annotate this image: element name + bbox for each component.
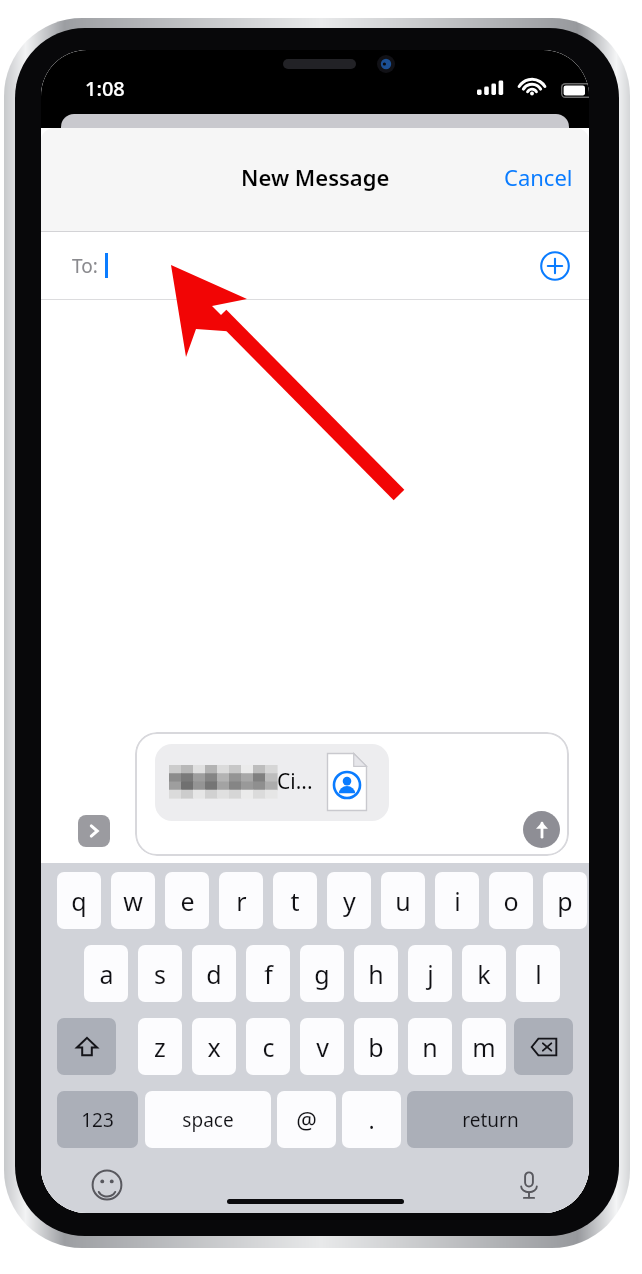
staticText: 1:08: [85, 75, 125, 102]
button[interactable]: c: [246, 1018, 290, 1075]
staticText: return: [462, 1107, 519, 1133]
button[interactable]: v: [300, 1018, 344, 1075]
button[interactable]: j: [408, 945, 452, 1002]
button[interactable]: l: [516, 945, 560, 1002]
staticText: s: [154, 957, 166, 991]
button[interactable]: b: [354, 1018, 398, 1075]
staticText: h: [368, 957, 384, 991]
staticText: d: [206, 957, 222, 991]
button[interactable]: m: [462, 1018, 506, 1075]
button[interactable]: Ci...: [155, 744, 389, 821]
button[interactable]: Shift: [57, 1018, 116, 1075]
staticText: Cancel: [504, 162, 573, 192]
button[interactable]: q: [57, 872, 101, 929]
button[interactable]: Expand apps: [78, 815, 110, 847]
button[interactable]: a: [84, 945, 128, 1002]
staticText: b: [368, 1030, 384, 1064]
button[interactable]: o: [489, 872, 533, 929]
button[interactable]: Emoji: [85, 1163, 129, 1207]
button[interactable]: g: [300, 945, 344, 1002]
button[interactable]: n: [408, 1018, 452, 1075]
button[interactable]: y: [327, 872, 371, 929]
staticText: j: [427, 957, 434, 991]
staticText: @: [296, 1104, 317, 1135]
button[interactable]: r: [219, 872, 263, 929]
button[interactable]: x: [192, 1018, 236, 1075]
staticText: n: [422, 1030, 438, 1064]
button[interactable]: w: [111, 872, 155, 929]
button[interactable]: k: [462, 945, 506, 1002]
staticText: New Message: [241, 162, 390, 192]
button[interactable]: z: [138, 1018, 182, 1075]
button[interactable]: d: [192, 945, 236, 1002]
button[interactable]: Add contact: [529, 240, 581, 292]
button[interactable]: @: [277, 1091, 336, 1148]
button[interactable]: s: [138, 945, 182, 1002]
button[interactable]: u: [381, 872, 425, 929]
button[interactable]: p: [543, 872, 587, 929]
staticText: e: [180, 884, 195, 918]
staticText: m: [472, 1030, 496, 1064]
staticText: y: [343, 884, 356, 918]
staticText: a: [99, 957, 114, 991]
staticText: To:: [72, 253, 98, 279]
button[interactable]: return: [407, 1091, 573, 1148]
staticText: l: [535, 957, 542, 991]
staticText: f: [264, 957, 273, 991]
button[interactable]: Backspace: [514, 1018, 573, 1075]
button[interactable]: i: [435, 872, 479, 929]
staticText: p: [557, 884, 573, 918]
staticText: t: [290, 884, 300, 918]
button[interactable]: To:: [41, 232, 589, 300]
button[interactable]: f: [246, 945, 290, 1002]
staticText: k: [477, 957, 491, 991]
button[interactable]: t: [273, 872, 317, 929]
staticText: o: [503, 884, 519, 918]
staticText: .: [368, 1104, 375, 1135]
staticText: z: [154, 1030, 166, 1064]
button[interactable]: Dictate: [507, 1163, 551, 1207]
button[interactable]: space: [145, 1091, 271, 1148]
staticText: v: [316, 1030, 329, 1064]
staticText: 123: [81, 1107, 114, 1133]
staticText: c: [262, 1030, 275, 1064]
staticText: i: [454, 884, 461, 918]
staticText: r: [236, 884, 247, 918]
button[interactable]: Cancel: [488, 154, 589, 200]
button[interactable]: e: [165, 872, 209, 929]
staticText: w: [123, 884, 143, 918]
staticText: Ci...: [277, 767, 313, 796]
staticText: g: [314, 957, 330, 991]
button[interactable]: Send: [523, 811, 560, 848]
staticText: space: [182, 1107, 234, 1133]
button[interactable]: 123: [57, 1091, 138, 1148]
staticText: q: [71, 884, 87, 918]
staticText: x: [207, 1030, 221, 1064]
button[interactable]: h: [354, 945, 398, 1002]
button[interactable]: .: [342, 1091, 401, 1148]
staticText: u: [395, 884, 411, 918]
button[interactable]: Ci...: [135, 732, 569, 856]
